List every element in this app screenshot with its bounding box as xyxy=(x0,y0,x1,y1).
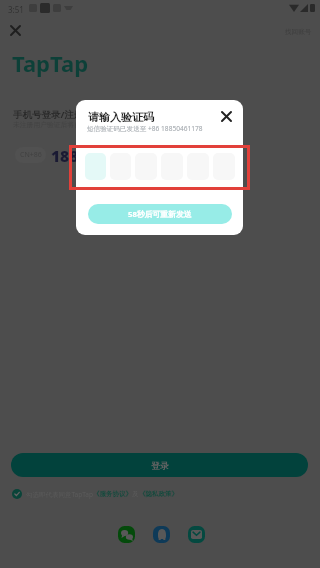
staticText: 188 5046 1178 xyxy=(51,145,159,166)
staticText: 《服务协议》 xyxy=(93,490,132,498)
staticText: 手机号登录/注册 xyxy=(13,108,84,121)
button[interactable]: Close login xyxy=(2,17,28,43)
button[interactable]: Agree to terms xyxy=(12,489,22,499)
staticText: 未注册用户验证后将自动注册 xyxy=(13,120,102,129)
button[interactable]: 登录 xyxy=(11,453,308,477)
staticText: TapTap xyxy=(12,48,89,78)
button[interactable]: WeChat login xyxy=(118,526,135,543)
staticText: 《隐私政策》 xyxy=(139,490,178,498)
staticText: 58秒后可重新发送 xyxy=(128,209,192,220)
staticText: 登录 xyxy=(151,460,169,471)
button[interactable]: Email login xyxy=(188,526,205,543)
staticText: CN+86 xyxy=(20,150,42,160)
button[interactable]: QQ login xyxy=(153,526,170,543)
staticText: 找回账号 xyxy=(285,28,312,36)
staticText: 及 xyxy=(132,490,139,498)
staticText: 请输入验证码 xyxy=(88,110,154,124)
button[interactable] xyxy=(85,153,106,180)
staticText: 3:51 xyxy=(8,4,24,15)
staticText: 短信验证码已发送至 +86 18850461178 xyxy=(87,124,203,133)
button[interactable]: Close xyxy=(217,107,236,126)
button[interactable]: 58秒后可重新发送 xyxy=(88,204,232,224)
